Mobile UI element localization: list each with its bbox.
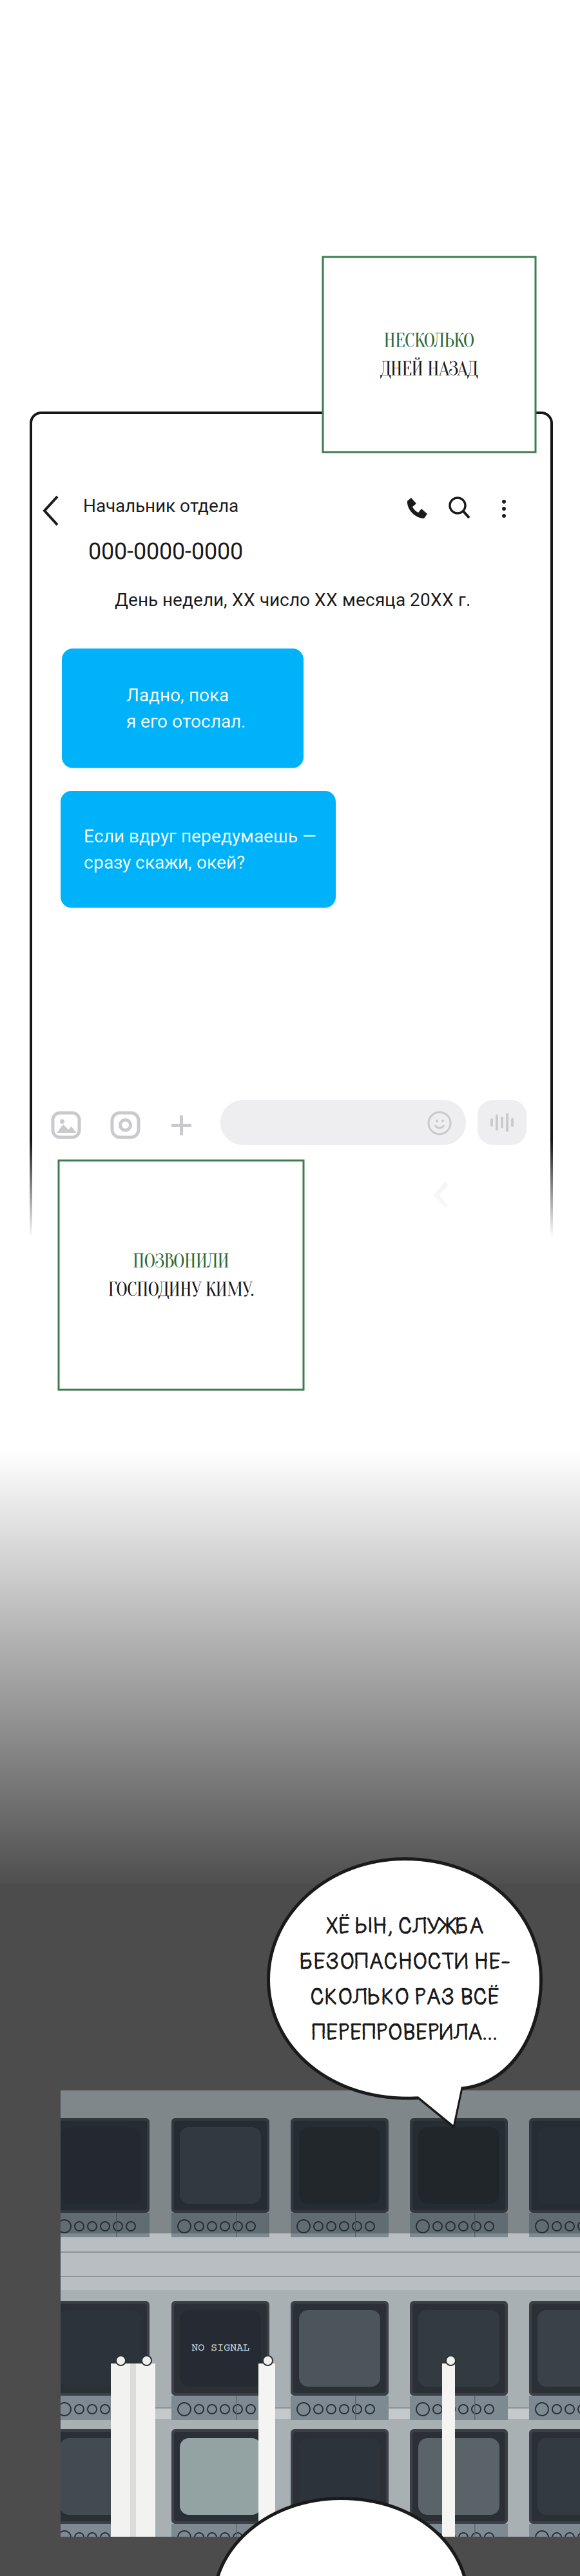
staticText: NO SIGNAL xyxy=(191,2342,249,2355)
staticText: 000-0000-0000 xyxy=(88,538,243,565)
staticText: День недели, XX число XX месяца 20XX г. xyxy=(115,589,470,610)
staticText: ДНЕЙ НАЗАД xyxy=(380,357,478,381)
button[interactable]: Search xyxy=(450,498,470,518)
staticText: Начальник отдела xyxy=(83,495,238,516)
button[interactable]: Voice message xyxy=(478,1100,527,1145)
staticText: ПЕРЕПРОВЕРИЛА... xyxy=(312,2018,498,2047)
staticText: НЕСКОЛЬКО xyxy=(384,328,475,352)
staticText: ПОЗВОНИЛИ xyxy=(133,1249,230,1273)
button[interactable]: Gallery xyxy=(53,1113,79,1137)
staticText: ГОСПОДИНУ КИМУ. xyxy=(108,1277,254,1301)
button[interactable]: Начальник отдела xyxy=(83,495,238,516)
button[interactable]: Add attachment xyxy=(171,1115,191,1135)
staticText: я его отослал. xyxy=(126,711,246,732)
staticText: СКОЛЬКО РАЗ ВСЁ xyxy=(310,1983,499,2012)
staticText: Если вдруг передумаешь — xyxy=(84,826,316,847)
button[interactable]: More options xyxy=(501,500,507,518)
staticText: ХЁ ЫН, СЛУЖБА xyxy=(326,1912,484,1941)
staticText: Ладно, пока xyxy=(126,685,229,706)
button[interactable]: Camera xyxy=(112,1113,139,1137)
button[interactable]: Call xyxy=(405,498,427,519)
button[interactable]: Back xyxy=(44,497,59,526)
staticText: БЕЗОПАСНОСТИ НЕ- xyxy=(299,1947,510,1976)
staticText: сразу скажи, окей? xyxy=(84,852,245,873)
button[interactable]: Message field xyxy=(220,1100,466,1145)
